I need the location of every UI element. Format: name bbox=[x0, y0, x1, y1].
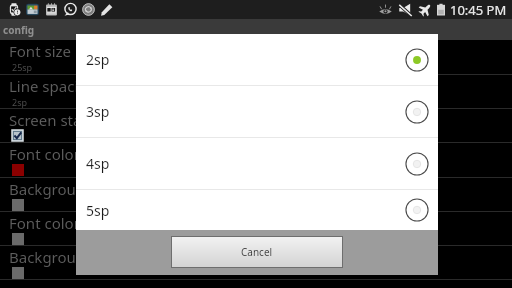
staticText: Cancel bbox=[241, 245, 273, 259]
staticText: Font size bbox=[9, 41, 72, 61]
button[interactable]: 2sp bbox=[76, 34, 438, 85]
staticText: config bbox=[3, 23, 35, 37]
button[interactable]: Background color bbox=[0, 178, 512, 211]
staticText: 10:45 PM bbox=[450, 1, 507, 19]
button[interactable]: Screen stays on bbox=[0, 109, 512, 142]
button[interactable]: 5sp bbox=[76, 190, 438, 230]
button[interactable]: Line spacing bbox=[0, 75, 512, 108]
staticText: Screen stays on bbox=[9, 110, 119, 130]
staticText: Font color bbox=[9, 144, 80, 164]
staticText: 2sp bbox=[86, 50, 405, 69]
staticText: 4sp bbox=[86, 154, 405, 173]
staticText: Font color 2 bbox=[9, 213, 93, 233]
staticText: 2sp bbox=[12, 96, 27, 108]
staticText: 3sp bbox=[86, 102, 405, 121]
staticText: Line spacing bbox=[9, 76, 97, 96]
staticText: Background color 2 bbox=[9, 247, 147, 267]
button[interactable]: Background color 2 bbox=[0, 246, 512, 279]
staticText: 25sp bbox=[12, 61, 33, 73]
button[interactable]: 4sp bbox=[76, 138, 438, 189]
button[interactable]: 3sp bbox=[76, 86, 438, 137]
button[interactable]: config bbox=[0, 19, 512, 40]
button[interactable]: Font size bbox=[0, 40, 512, 74]
staticText: 5sp bbox=[86, 201, 405, 220]
button[interactable]: Font color 2 bbox=[0, 212, 512, 245]
button[interactable]: Cancel bbox=[171, 236, 343, 268]
staticText: Background color bbox=[9, 179, 134, 199]
button[interactable]: Font color bbox=[0, 143, 512, 177]
